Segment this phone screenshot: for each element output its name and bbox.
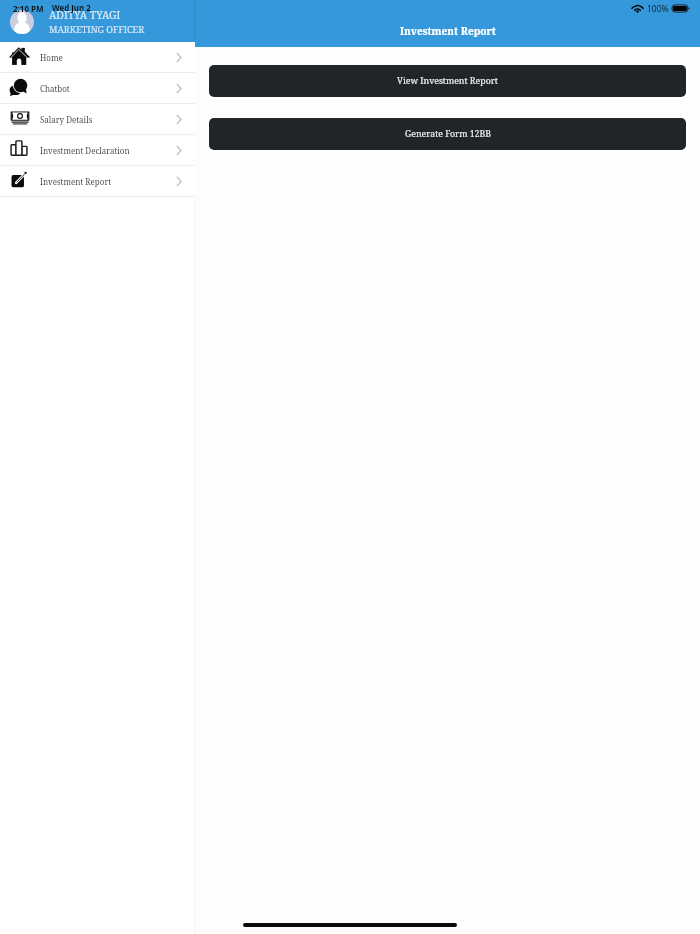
button[interactable]: Chatbot (0, 73, 195, 103)
staticText: 2:10 PM (13, 3, 44, 14)
button[interactable]: View Investment Report (209, 65, 686, 97)
staticText: Chatbot (40, 83, 70, 94)
staticText: Home (40, 52, 63, 63)
staticText: Wed Jun 2 (52, 3, 91, 14)
staticText: MARKETING OFFICER (49, 23, 145, 35)
button[interactable]: Investment Report (0, 166, 195, 196)
staticText: Investment Report (400, 24, 496, 38)
button[interactable]: Salary Details (0, 104, 195, 134)
button[interactable]: Home (0, 42, 195, 72)
staticText: View Investment Report (397, 75, 498, 87)
staticText: Generate Form 12BB (405, 128, 491, 140)
button[interactable]: Profile photo (0, 0, 195, 42)
staticText: Investment Declaration (40, 145, 130, 156)
button[interactable]: Investment Declaration (0, 135, 195, 165)
staticText: Investment Report (40, 176, 111, 187)
staticText: ADITYA TYAGI (49, 8, 121, 22)
button[interactable]: Generate Form 12BB (209, 118, 686, 150)
other: Profile photo (10, 8, 34, 34)
staticText: 100% (647, 3, 669, 15)
staticText: Salary Details (40, 114, 93, 125)
